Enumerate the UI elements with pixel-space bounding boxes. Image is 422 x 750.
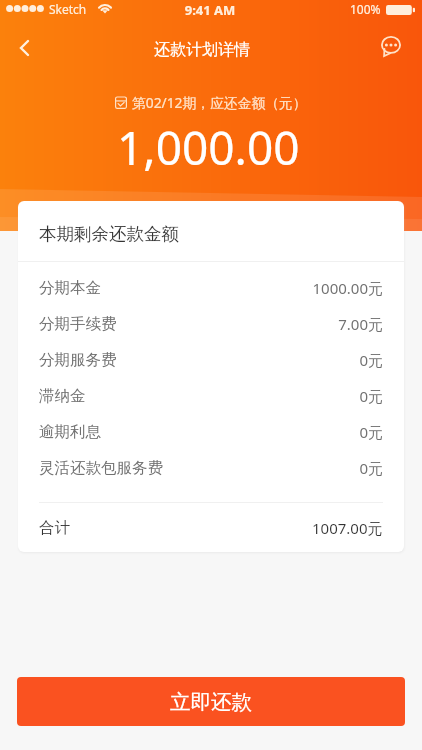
button[interactable]: 立即还款 [17,677,405,726]
staticText: 1,000.00 [117,116,300,179]
staticText: 分期本金 [39,278,101,298]
staticText: 0元 [359,422,383,442]
staticText: 本期剩余还款金额 [39,223,179,245]
staticText: 0元 [359,386,383,406]
staticText: 逾期利息 [39,422,101,442]
staticText: 100% [350,1,381,17]
staticText: 滞纳金 [39,386,86,406]
staticText: 0元 [359,458,383,478]
staticText: 第02/12期，应还金额（元） [132,93,307,112]
staticText: 1007.00元 [312,518,383,538]
staticText: 分期手续费 [39,314,117,334]
staticText: 7.00元 [338,314,383,334]
staticText: 还款计划详情 [0,40,413,60]
staticText: 灵活还款包服务费 [39,458,163,478]
staticText: 0元 [359,350,383,370]
staticText: 合计 [39,518,70,538]
staticText: Sketch [49,1,87,17]
staticText: 1000.00元 [312,278,383,298]
staticText: 9:41 AM [0,1,421,19]
button[interactable]: Customer service chat [369,24,413,68]
button[interactable]: Back [2,26,46,70]
staticText: 分期服务费 [39,350,117,370]
staticText: 立即还款 [170,689,252,715]
